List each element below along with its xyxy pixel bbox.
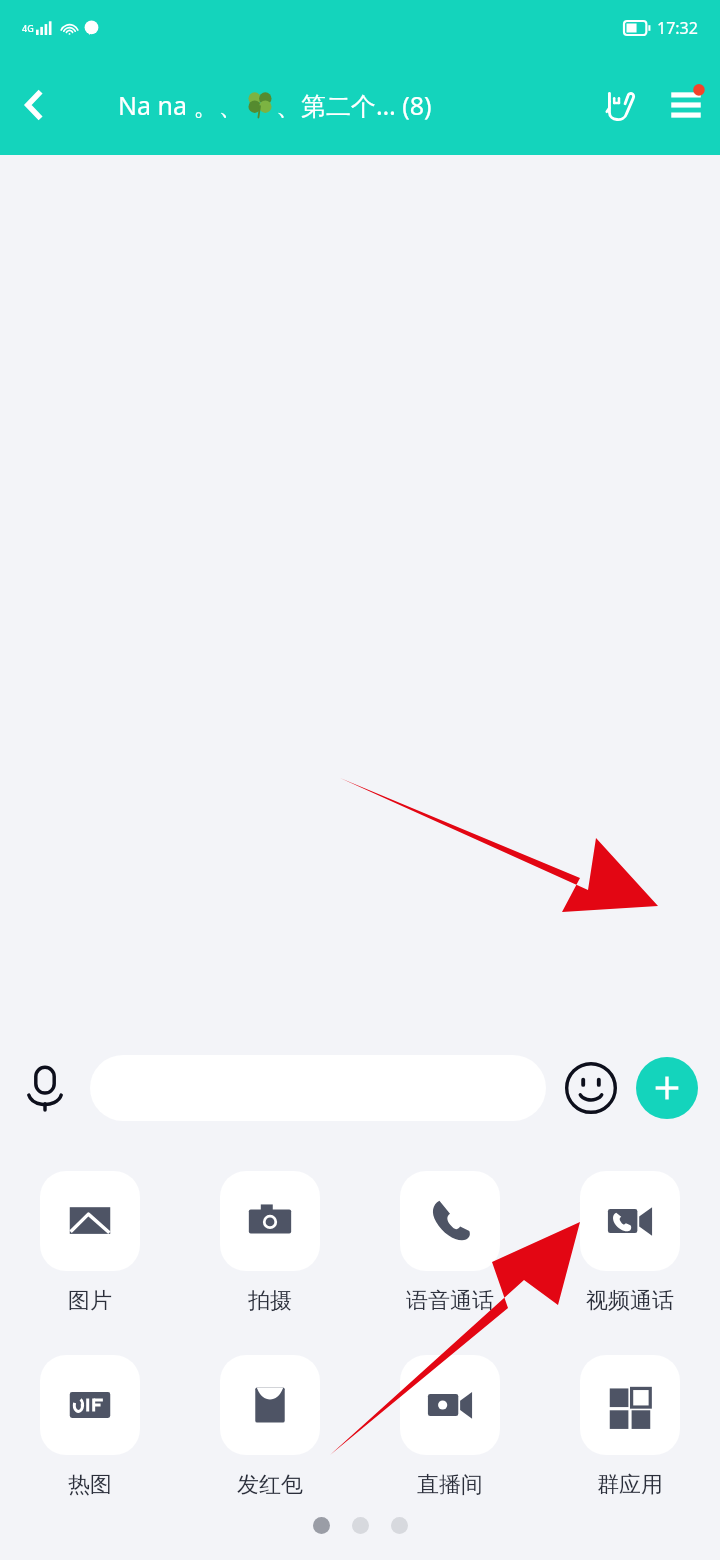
button[interactable]: 群应用 (560, 1355, 700, 1499)
button[interactable]: Back (0, 71, 68, 139)
staticText: 、第二个… (8) (276, 88, 432, 122)
staticText: 拍摄 (248, 1287, 292, 1315)
button[interactable]: Menu (652, 71, 720, 139)
staticText: Na na 。、 (118, 88, 244, 122)
staticText: 热图 (68, 1471, 112, 1499)
staticText: 发红包 (237, 1471, 303, 1499)
button[interactable]: Voice message (0, 1043, 90, 1133)
staticText: 直播间 (417, 1471, 483, 1499)
button[interactable]: 发红包 (200, 1355, 340, 1499)
button[interactable]: 直播间 (380, 1355, 520, 1499)
button[interactable]: Group signal (590, 74, 652, 136)
button[interactable]: Emoji (546, 1043, 636, 1133)
staticText: 视频通话 (586, 1287, 674, 1315)
button[interactable]: More options (636, 1057, 698, 1119)
button[interactable]: 拍摄 (200, 1171, 340, 1315)
staticText: 图片 (68, 1287, 112, 1315)
button[interactable]: 语音通话 (380, 1171, 520, 1315)
button[interactable]: 热图 (20, 1355, 160, 1499)
staticText: 17:32 (657, 17, 698, 39)
staticText: 4G (22, 22, 34, 34)
button[interactable]: 视频通话 (560, 1171, 700, 1315)
staticText: 语音通话 (406, 1287, 494, 1315)
staticText: 群应用 (597, 1471, 663, 1499)
button[interactable]: 图片 (20, 1171, 160, 1315)
